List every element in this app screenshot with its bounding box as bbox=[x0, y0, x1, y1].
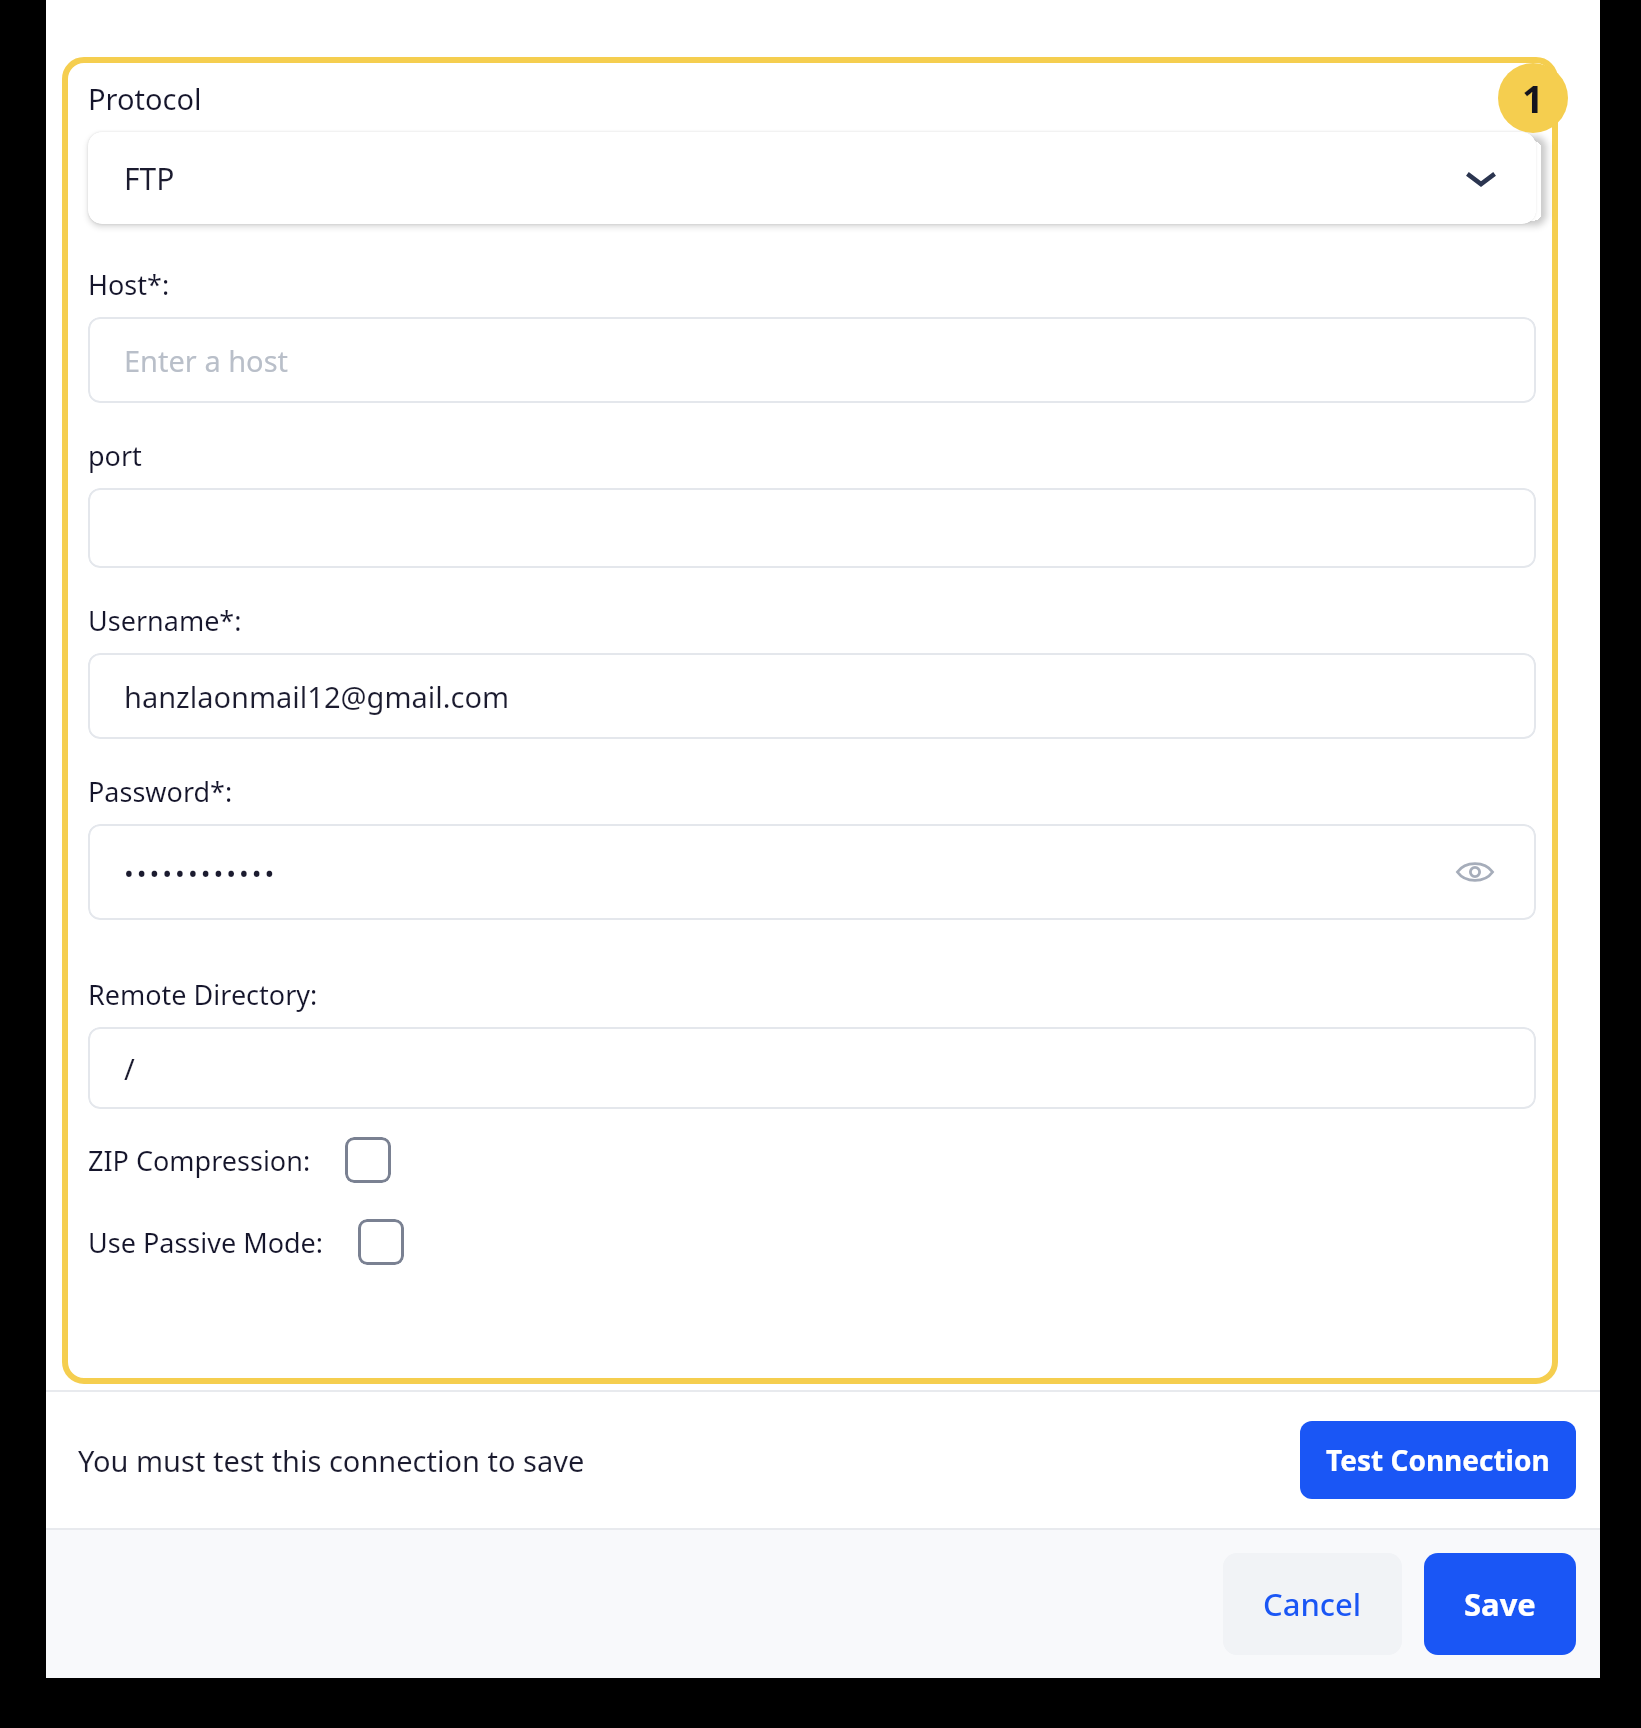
button[interactable]: Test Connection bbox=[1300, 1421, 1576, 1499]
button[interactable]: Step 1 bbox=[1498, 63, 1568, 133]
staticText: FTP bbox=[124, 158, 175, 199]
button[interactable]: Cancel bbox=[1223, 1553, 1402, 1655]
staticText: ZIP Compression: bbox=[88, 1142, 311, 1179]
staticText: Remote Directory: bbox=[88, 976, 318, 1013]
button[interactable]: ZIP Compression: bbox=[88, 1137, 391, 1183]
staticText: Use Passive Mode: bbox=[88, 1224, 324, 1261]
button[interactable]: Show password bbox=[1452, 849, 1498, 895]
staticText: Host*: bbox=[88, 266, 170, 303]
staticText: port bbox=[88, 437, 142, 474]
staticText: 1 bbox=[1522, 72, 1544, 124]
staticText: Save bbox=[1464, 1583, 1536, 1625]
button[interactable]: / bbox=[88, 1027, 1536, 1109]
button[interactable]: hanzlaonmail12@gmail.com bbox=[88, 653, 1536, 739]
button[interactable]: Save bbox=[1424, 1553, 1576, 1655]
staticText: Test Connection bbox=[1326, 1441, 1550, 1479]
button[interactable]: Use Passive Mode: bbox=[88, 1219, 404, 1265]
staticText: Password*: bbox=[88, 773, 233, 810]
button[interactable]: Enter a host bbox=[88, 317, 1536, 403]
button[interactable]: •••••••••••• bbox=[88, 824, 1536, 920]
staticText: Enter a host bbox=[124, 341, 289, 380]
staticText: Cancel bbox=[1263, 1583, 1362, 1625]
staticText: / bbox=[124, 1049, 135, 1088]
button[interactable]: FTP bbox=[88, 132, 1536, 224]
button[interactable] bbox=[88, 488, 1536, 568]
staticText: You must test this connection to save bbox=[78, 1441, 585, 1480]
staticText: •••••••••••• bbox=[124, 855, 278, 890]
staticText: hanzlaonmail12@gmail.com bbox=[124, 677, 510, 716]
staticText: Username*: bbox=[88, 602, 242, 639]
other: Expand protocol bbox=[1464, 161, 1498, 195]
staticText: Protocol bbox=[88, 79, 202, 118]
